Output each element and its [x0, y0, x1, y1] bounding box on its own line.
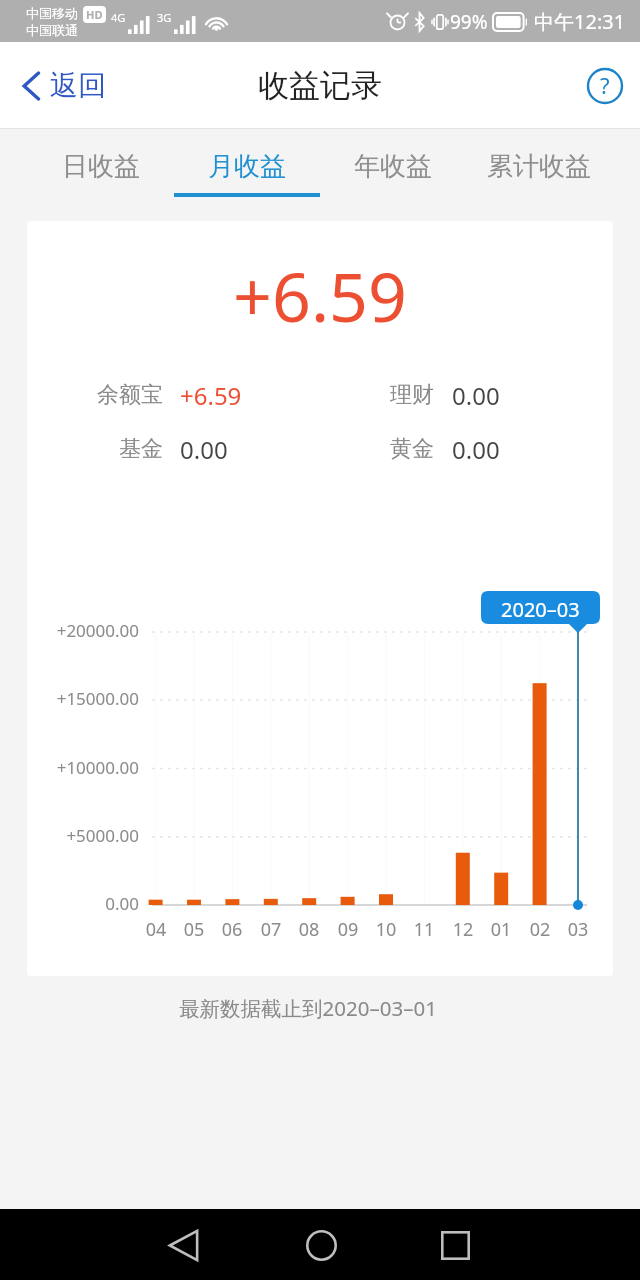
staticText: 0.00 [27, 892, 139, 915]
staticText: 0.00 [452, 379, 500, 412]
staticText: 基金 [27, 435, 163, 463]
staticText: 2020–03 [501, 596, 580, 623]
staticText: 收益记录 [258, 66, 382, 105]
staticText: +6.59 [27, 249, 613, 342]
staticText: 3G [157, 10, 172, 25]
staticText: 日收益 [62, 150, 140, 183]
staticText: 12 [444, 917, 482, 942]
button[interactable]: Recents [425, 1215, 485, 1275]
button[interactable]: 累计收益 [466, 129, 612, 208]
staticText: 03 [559, 917, 597, 942]
staticText: +20000.00 [27, 619, 139, 642]
staticText: 最新数据截止到2020–03–01 [0, 994, 628, 1022]
staticText: 08 [290, 917, 328, 942]
staticText: 余额宝 [27, 381, 163, 409]
staticText: 黄金 [298, 435, 434, 463]
staticText: 月收益 [208, 150, 286, 183]
staticText: +5000.00 [27, 824, 139, 847]
staticText: 中午12:31 [534, 8, 626, 35]
staticText: +15000.00 [27, 687, 139, 710]
staticText: 返回 [50, 68, 106, 103]
button[interactable]: 年收益 [320, 129, 466, 208]
staticText: 年收益 [354, 150, 432, 183]
staticText: 04 [137, 917, 175, 942]
staticText: ? [600, 70, 610, 100]
button[interactable]: 日收益 [28, 129, 174, 208]
button[interactable]: 返回 [22, 68, 106, 103]
staticText: 07 [252, 917, 290, 942]
staticText: 06 [213, 917, 251, 942]
staticText: +6.59 [180, 379, 242, 412]
staticText: 中国联通 [26, 22, 78, 38]
staticText: HD [86, 7, 103, 22]
staticText: 11 [405, 917, 443, 942]
staticText: 0.00 [180, 433, 228, 466]
button[interactable]: Help [586, 67, 624, 105]
button[interactable]: Back [153, 1215, 213, 1275]
button[interactable]: Home [291, 1215, 351, 1275]
staticText: 10 [367, 917, 405, 942]
button[interactable]: 月收益 [174, 129, 320, 208]
staticText: 累计收益 [487, 150, 591, 183]
staticText: +10000.00 [27, 756, 139, 779]
staticText: 中国移动 [26, 5, 78, 21]
staticText: 01 [482, 917, 520, 942]
staticText: 02 [521, 917, 559, 942]
staticText: 4G [111, 10, 126, 25]
staticText: 05 [175, 917, 213, 942]
staticText: 99% [450, 9, 488, 35]
staticText: 0.00 [452, 433, 500, 466]
staticText: 09 [329, 917, 367, 942]
staticText: 理财 [298, 381, 434, 409]
